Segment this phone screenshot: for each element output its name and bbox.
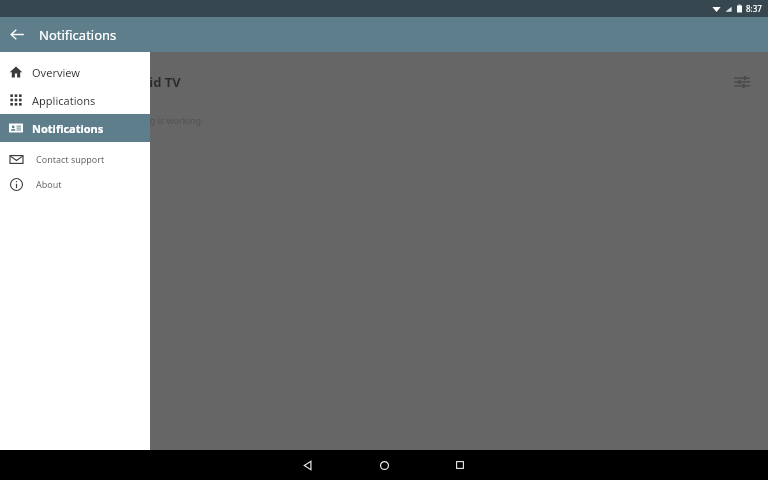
button[interactable]: Filter settings: [722, 62, 762, 102]
staticText: 8:37: [746, 3, 762, 14]
staticText: Notifications: [32, 121, 104, 136]
staticText: Android TV: [110, 73, 181, 91]
staticText: Contact support: [36, 153, 105, 165]
button[interactable]: Contact support: [0, 146, 150, 171]
button[interactable]: Home: [354, 450, 414, 480]
staticText: Notifications: [39, 26, 117, 44]
button[interactable]: Recents: [430, 450, 490, 480]
button[interactable]: About: [0, 171, 150, 196]
button[interactable]: Notifications: [0, 114, 150, 142]
staticText: Applications: [32, 93, 96, 108]
staticText: About: [36, 178, 62, 190]
button[interactable]: Back: [278, 450, 338, 480]
button[interactable]: Overview: [0, 58, 150, 86]
staticText: Overview: [32, 65, 80, 80]
button[interactable]: Back: [0, 17, 35, 52]
button[interactable]: Applications: [0, 86, 150, 114]
staticText: Everything is working.: [110, 114, 204, 126]
